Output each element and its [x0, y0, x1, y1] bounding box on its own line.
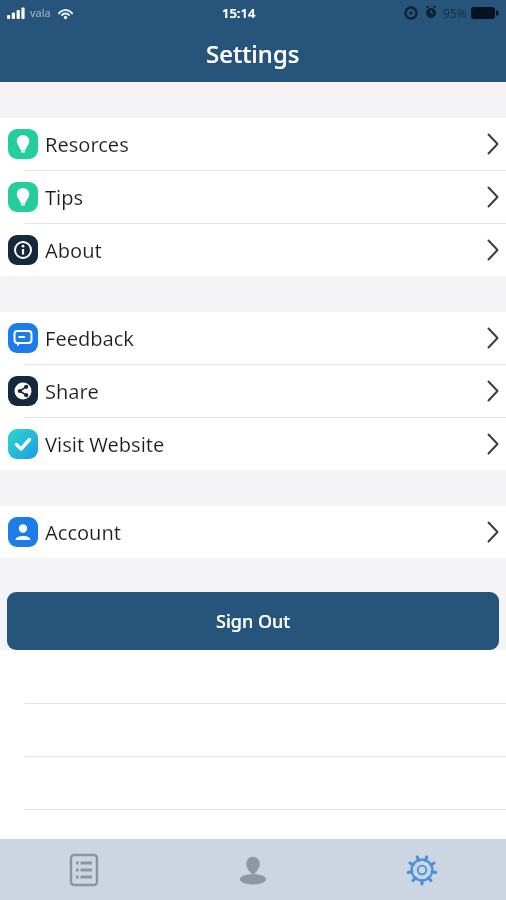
- staticText: vala: [30, 5, 51, 20]
- staticText: 15:14: [222, 4, 256, 22]
- staticText: Sign Out: [216, 609, 291, 634]
- button[interactable]: About: [0, 224, 506, 276]
- button[interactable]: Feedback: [0, 312, 506, 364]
- staticText: Tips: [45, 184, 84, 211]
- staticText: Share: [45, 378, 99, 405]
- button[interactable]: [168, 839, 337, 900]
- staticText: Account: [45, 519, 122, 546]
- staticText: Settings: [206, 37, 300, 70]
- staticText: Visit Website: [45, 431, 165, 458]
- staticText: About: [45, 237, 102, 264]
- button[interactable]: Sign Out: [7, 592, 499, 650]
- button[interactable]: Resorces: [0, 118, 506, 170]
- button[interactable]: Visit Website: [0, 418, 506, 470]
- button[interactable]: [0, 839, 168, 900]
- button[interactable]: Account: [0, 506, 506, 558]
- staticText: Feedback: [45, 325, 135, 352]
- button[interactable]: Share: [0, 365, 506, 417]
- button[interactable]: Tips: [0, 171, 506, 223]
- staticText: Resorces: [45, 131, 129, 158]
- button[interactable]: [337, 839, 506, 900]
- staticText: 95%: [443, 5, 467, 21]
